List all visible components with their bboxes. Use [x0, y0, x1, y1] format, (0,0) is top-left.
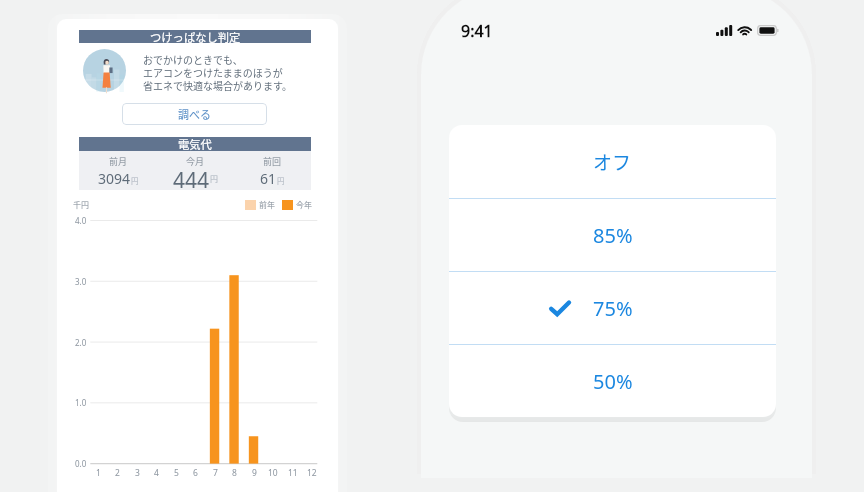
staticText: 1.0 — [75, 397, 87, 408]
staticText: 7 — [213, 467, 218, 479]
button[interactable]: 75% — [449, 272, 776, 344]
staticText: 9:41 — [461, 20, 493, 42]
staticText: 3.0 — [75, 276, 87, 287]
staticText: 85% — [593, 222, 633, 249]
staticText: 444 — [173, 166, 210, 188]
button[interactable]: オフ — [449, 125, 776, 198]
button[interactable]: 85% — [449, 199, 776, 271]
staticText: オフ — [593, 148, 632, 176]
staticText: 前年 — [259, 199, 275, 211]
staticText: 電気代 — [178, 136, 212, 152]
staticText: 円 — [210, 173, 218, 185]
staticText: 円 — [131, 175, 139, 186]
staticText: 2 — [115, 467, 120, 479]
staticText: 2.0 — [75, 337, 87, 348]
staticText: 11 — [288, 467, 298, 479]
staticText: 75% — [593, 295, 633, 322]
other: Status: signal, wifi, battery — [716, 25, 780, 36]
staticText: 4.0 — [75, 215, 87, 226]
staticText: 前回 — [263, 155, 282, 168]
staticText: 調べる — [178, 106, 211, 122]
staticText: 円 — [277, 175, 285, 186]
staticText: 今年 — [296, 199, 312, 211]
button[interactable]: 調べる — [122, 103, 267, 125]
staticText: 50% — [593, 368, 633, 395]
staticText: 6 — [193, 467, 198, 479]
staticText: 61 — [260, 169, 277, 188]
staticText: 3 — [135, 467, 140, 479]
staticText: 5 — [174, 467, 179, 479]
staticText: つけっぱなし判定 — [150, 29, 241, 45]
staticText: 8 — [232, 467, 237, 479]
staticText: 12 — [307, 467, 317, 479]
staticText: 前月 — [109, 155, 128, 168]
staticText: 0.0 — [75, 458, 87, 469]
staticText: 今月 — [186, 155, 205, 168]
staticText: 9 — [252, 467, 257, 479]
staticText: 4 — [154, 467, 159, 479]
staticText: 3094 — [98, 169, 131, 188]
staticText: おでかけのときでも、 エアコンをつけたままのほうが 省エネで快適な場合があります… — [143, 52, 292, 93]
staticText: 千円 — [73, 199, 89, 211]
staticText: 10 — [268, 467, 278, 479]
button[interactable]: 50% — [449, 345, 776, 417]
staticText: 1 — [96, 467, 101, 479]
